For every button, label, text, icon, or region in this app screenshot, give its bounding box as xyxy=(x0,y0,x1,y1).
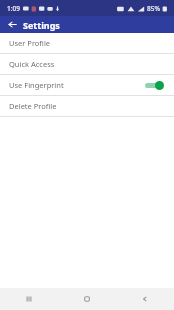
button[interactable]: Recent apps xyxy=(0,288,58,310)
staticText: Quick Access xyxy=(9,59,55,69)
staticText: 85% xyxy=(147,4,160,13)
button[interactable]: Home xyxy=(58,288,116,310)
staticText: Use Fingerprint xyxy=(9,80,64,90)
button[interactable]: Delete Profile xyxy=(0,96,174,116)
button[interactable]: Quick Access xyxy=(0,54,174,74)
button[interactable]: Use Fingerprint toggle xyxy=(143,79,165,91)
staticText: Settings xyxy=(23,19,60,31)
button[interactable]: Back xyxy=(5,17,20,32)
button[interactable]: User Profile xyxy=(0,33,174,53)
button[interactable]: Back xyxy=(116,288,174,310)
staticText: 1:09 xyxy=(7,4,20,13)
button[interactable]: Use Fingerprint xyxy=(0,75,174,95)
staticText: Delete Profile xyxy=(9,101,57,111)
staticText: User Profile xyxy=(9,38,51,48)
